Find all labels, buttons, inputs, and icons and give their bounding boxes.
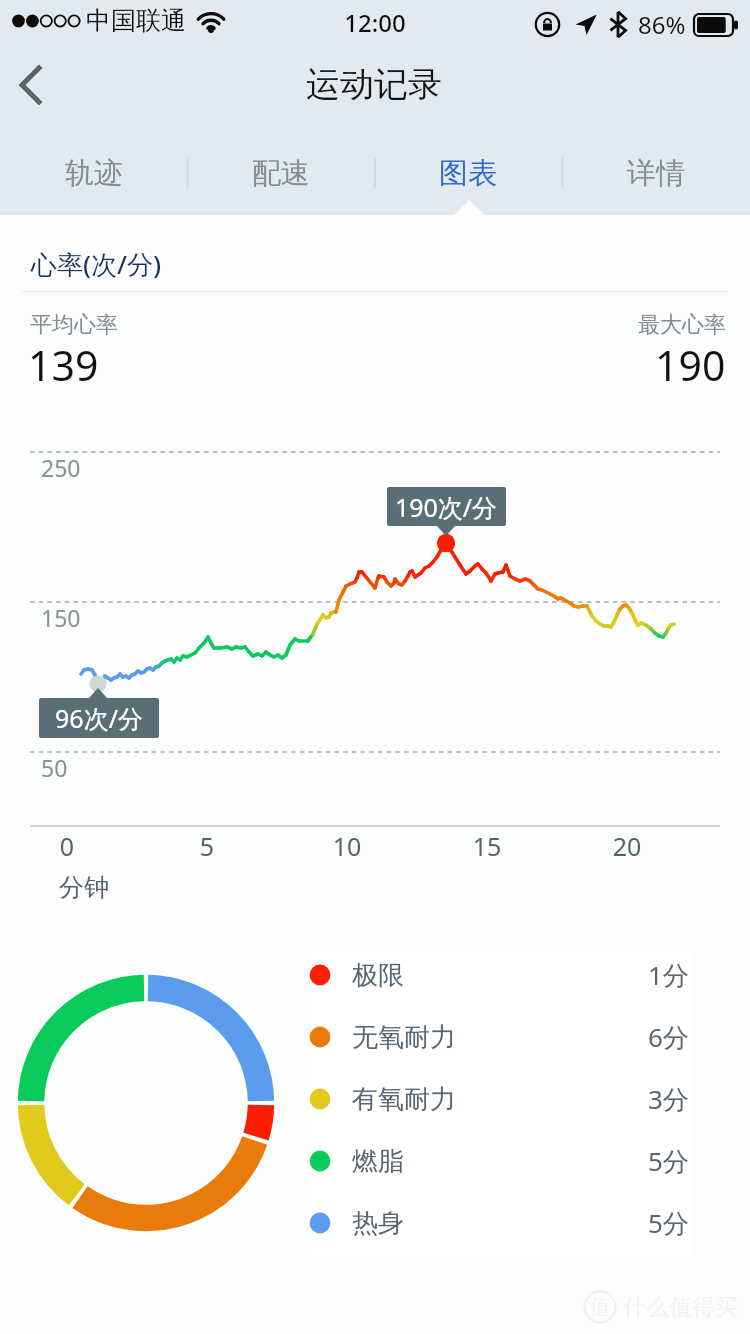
staticText: 15 [337, 829, 637, 863]
staticText: 配速 [252, 155, 310, 192]
staticText: 运动记录 [224, 63, 524, 106]
button[interactable]: 配速 [187, 140, 374, 206]
staticText: 什么值得买 [623, 1293, 738, 1322]
button[interactable]: 极限 [310, 944, 689, 1006]
staticText: 有氧耐力 [352, 1083, 456, 1116]
staticText: 极限 [352, 959, 404, 992]
button[interactable]: 无氧耐力 [310, 1006, 689, 1068]
staticText: 热身 [352, 1207, 404, 1240]
staticText: 平均心率 [30, 311, 118, 339]
button[interactable]: 详情 [562, 140, 750, 206]
staticText: 无氧耐力 [352, 1021, 456, 1054]
staticText: 值 [450, 1294, 750, 1320]
staticText: 图表 [439, 155, 497, 192]
button[interactable]: 有氧耐力 [310, 1068, 689, 1130]
staticText: 190 [655, 337, 726, 393]
button[interactable]: 图表 [374, 140, 562, 206]
button[interactable]: 轨迹 [0, 140, 187, 206]
staticText: 10 [197, 829, 497, 863]
staticText: 5分 [648, 1205, 689, 1241]
staticText: 详情 [627, 155, 685, 192]
staticText: 12:00 [225, 6, 525, 39]
staticText: 96次/分 [0, 701, 249, 735]
staticText: 1分 [648, 957, 689, 993]
staticText: 6分 [648, 1019, 689, 1055]
staticText: 20 [477, 829, 750, 863]
staticText: 中国联通 [86, 5, 186, 36]
staticText: 190次/分 [296, 490, 596, 524]
staticText: 50 [41, 752, 68, 783]
staticText: 3分 [648, 1081, 689, 1117]
staticText: 燃脂 [352, 1145, 404, 1178]
staticText: 最大心率 [638, 311, 726, 339]
staticText: 轨迹 [65, 155, 123, 192]
staticText: 250 [41, 452, 81, 483]
staticText: 0 [0, 829, 217, 863]
staticText: 5分 [648, 1143, 689, 1179]
staticText: 分钟 [59, 872, 109, 903]
staticText: 150 [41, 602, 81, 633]
button[interactable]: 热身 [310, 1192, 689, 1254]
staticText: 86% [638, 8, 686, 41]
button[interactable]: Back [2, 56, 60, 114]
staticText: 5 [57, 829, 357, 863]
staticText: 139 [28, 337, 99, 393]
button[interactable]: 燃脂 [310, 1130, 689, 1192]
staticText: 心率(次/分) [31, 246, 162, 282]
